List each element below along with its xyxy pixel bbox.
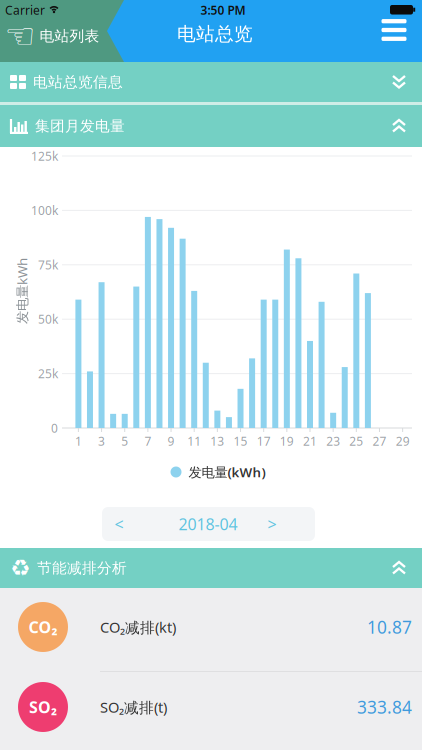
staticText: 11 <box>187 433 201 449</box>
staticText: 75k <box>38 257 58 273</box>
staticText: 23 <box>326 433 340 449</box>
staticText: 节能减排分析 <box>37 559 127 577</box>
staticText: 333.84 <box>357 695 412 718</box>
button[interactable] <box>377 15 410 45</box>
button[interactable]: CO₂ <box>0 588 422 670</box>
button[interactable]: 集团月发电量 <box>0 105 422 147</box>
staticText: 集团月发电量 <box>35 117 125 135</box>
staticText: 25 <box>349 433 363 449</box>
staticText: 3:50 PM <box>200 2 245 18</box>
button[interactable]: ☜ <box>0 18 106 54</box>
staticText: 3 <box>98 433 105 449</box>
button[interactable]: 电站总览信息 <box>0 62 422 102</box>
staticText: Carrier <box>5 2 45 18</box>
staticText: 13 <box>210 433 224 449</box>
staticText: 7 <box>144 433 151 449</box>
staticText: 27 <box>372 433 386 449</box>
staticText: 19 <box>280 433 294 449</box>
staticText: 2018-04 <box>178 513 237 535</box>
staticText: SO₂减排(t) <box>100 697 167 717</box>
staticText: CO₂ <box>28 616 57 638</box>
staticText: ☜ <box>4 16 35 56</box>
staticText: 发电量kWh <box>0 282 55 300</box>
staticText: 17 <box>257 433 271 449</box>
button[interactable]: ♻ <box>0 548 422 588</box>
staticText: 25k <box>38 366 58 381</box>
staticText: 100k <box>31 202 58 218</box>
button[interactable]: > <box>255 507 289 541</box>
staticText: 电站总览信息 <box>33 73 123 91</box>
staticText: 29 <box>396 433 410 449</box>
button[interactable]: SO₂ <box>0 672 422 750</box>
staticText: < <box>114 513 123 535</box>
staticText: CO₂减排(kt) <box>100 617 176 637</box>
staticText: > <box>267 513 276 535</box>
staticText: 发电量(kWh) <box>188 463 265 481</box>
staticText: 125k <box>31 148 58 164</box>
button[interactable]: < <box>102 507 136 541</box>
staticText: 15 <box>233 433 247 449</box>
staticText: SO₂ <box>29 696 57 718</box>
staticText: 0 <box>51 420 58 436</box>
staticText: 50k <box>38 311 58 327</box>
staticText: 21 <box>303 433 317 449</box>
staticText: ♻ <box>10 555 30 581</box>
staticText: 电站总览 <box>177 22 253 45</box>
staticText: 5 <box>121 433 128 449</box>
staticText: 电站列表 <box>39 27 99 45</box>
staticText: 1 <box>75 433 82 449</box>
staticText: 9 <box>167 433 174 449</box>
staticText: 10.87 <box>367 615 412 638</box>
